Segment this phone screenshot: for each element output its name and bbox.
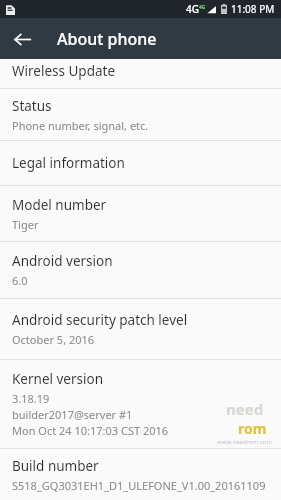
button[interactable]: Wireless Update [0,59,281,88]
button[interactable]: Kernel version [0,360,281,448]
staticText: About phone [57,28,157,50]
staticText: www.needrom.com [217,438,273,446]
staticText: 4G [199,4,206,11]
staticText: 4G [186,2,199,16]
button[interactable]: Android version [0,242,281,298]
staticText: Wireless Update [12,62,116,80]
button[interactable]: Legal information [0,141,281,185]
staticText: Android version [12,252,113,270]
staticText: Android security patch level [12,311,188,329]
button[interactable]: Android security patch level [0,299,281,359]
button[interactable]: Model number [0,186,281,241]
staticText: 3.18.19 [12,391,50,406]
staticText: need [226,399,264,419]
button[interactable]: Status [0,89,281,140]
staticText: builder2017@server #1 [12,407,133,422]
staticText: Phone number, signal, etc. [12,118,149,133]
staticText: 11:08 PM [231,2,275,16]
button[interactable]: Back [4,21,40,57]
staticText: Mon Oct 24 10:17:03 CST 2016 [12,423,169,438]
staticText: Build number [12,457,99,475]
staticText: Kernel version [12,370,104,388]
staticText: Model number [12,196,107,214]
staticText: 6.0 [12,273,28,288]
staticText: Legal information [12,154,125,172]
staticText: S518_GQ3031EH1_D1_ULEFONE_V1.00_20161109 [12,478,266,493]
staticText: October 5, 2016 [12,332,95,347]
staticText: rom [238,419,267,438]
button[interactable]: Build number [0,449,281,500]
staticText: Tiger [12,217,39,232]
staticText: Status [12,97,52,115]
